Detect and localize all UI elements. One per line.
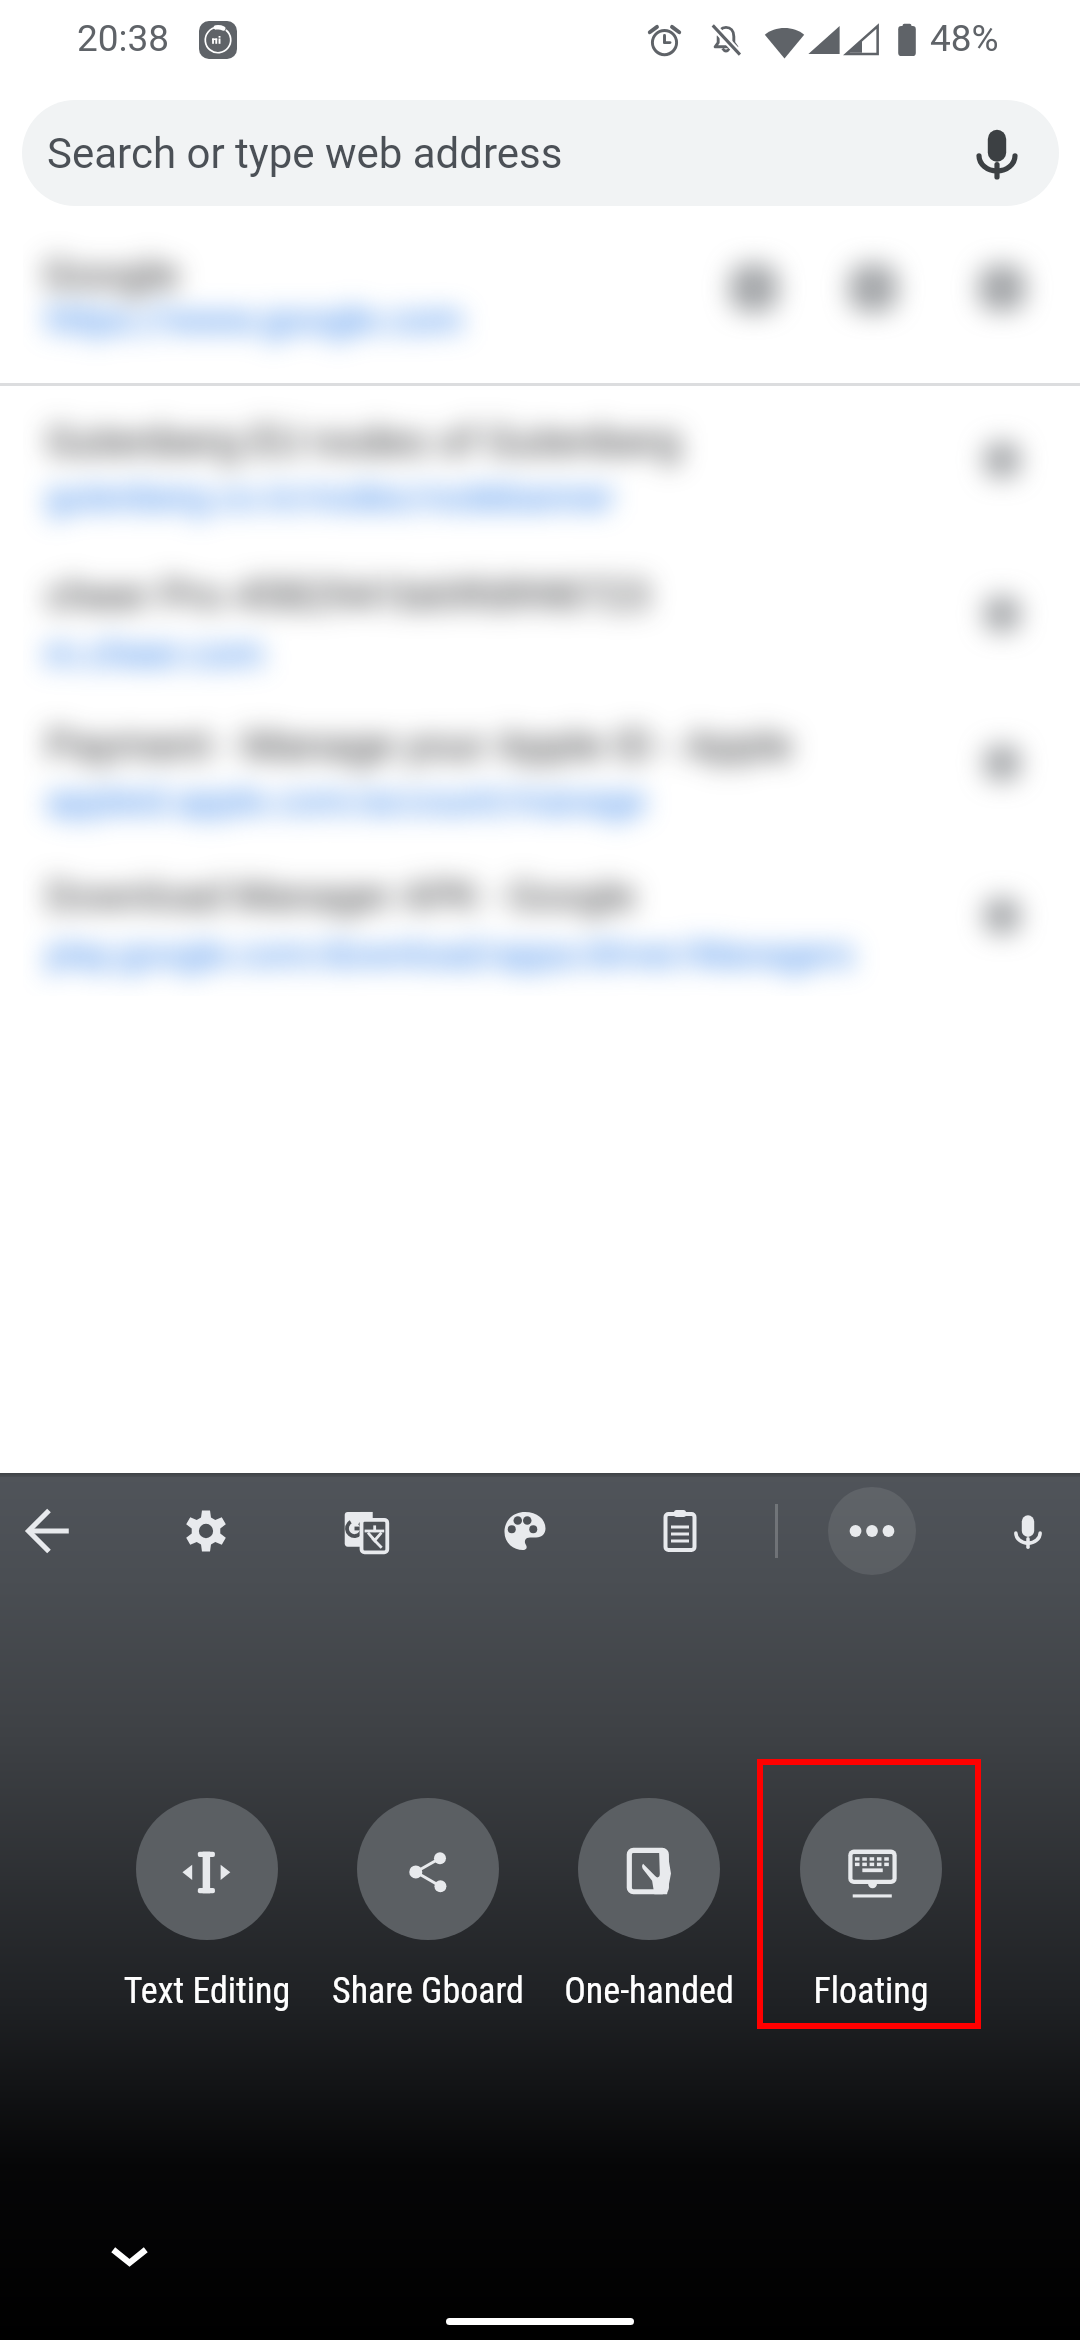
staticText: Share Gboard [298,1970,558,2012]
button[interactable]: Share Gboard [298,1798,558,2012]
button[interactable]: Themes [476,1482,574,1580]
staticText: Search or type web address [47,129,563,178]
staticText: cheer Pro 4582941b69fd998723 [46,571,651,620]
button[interactable]: Settings [157,1482,255,1580]
button[interactable]: Back [0,1482,98,1580]
button[interactable]: Voice search [957,113,1037,193]
staticText: gutenberg.co.in/nodes/nodebanner [46,477,614,519]
staticText: Google [43,249,179,299]
staticText: appleid.apple.com/account/manage [46,780,646,823]
staticText: https://www.google.com [46,298,463,343]
staticText: play.google.com/download/apps/driver/Man… [46,934,854,976]
staticText: 48% [930,17,999,60]
staticText: One-handed [519,1970,779,2012]
button[interactable]: One-handed [519,1798,779,2012]
staticText: Floating [741,1970,1001,2012]
button[interactable]: Search or type web address [22,100,1059,206]
button[interactable]: Hide keyboard [100,2226,159,2285]
staticText: m.cheer.com [44,632,264,677]
staticText: 20:38 [77,17,170,60]
staticText: Download Manager APK - Google [46,873,636,920]
button[interactable]: Text Editing [77,1798,337,2012]
staticText: Gutenberg EU nodes of Gutenberg [46,417,681,466]
button[interactable]: Voice input [979,1482,1077,1580]
button[interactable]: Floating [741,1798,1001,2012]
button[interactable]: Clipboard [631,1482,729,1580]
staticText: Payment - Manage your Apple ID - Apple [46,721,793,770]
button[interactable]: More options [828,1487,916,1575]
staticText: Text Editing [77,1970,337,2012]
button[interactable]: Translate [317,1482,415,1580]
